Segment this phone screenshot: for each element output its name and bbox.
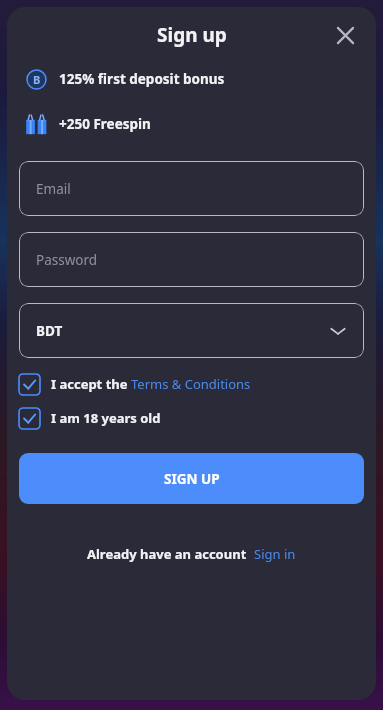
button[interactable]: Sign in — [254, 545, 296, 563]
button[interactable]: Password — [19, 232, 364, 287]
button[interactable]: BDT — [19, 303, 364, 358]
staticText: I am 18 years old — [51, 409, 161, 427]
button[interactable]: I accept the — [19, 370, 364, 398]
staticText: B — [33, 72, 41, 87]
button[interactable]: I am 18 years old — [19, 404, 364, 432]
staticText: Terms & Conditions — [131, 375, 251, 393]
staticText: Password — [36, 251, 98, 269]
staticText: BDT — [36, 322, 63, 340]
staticText: Sign up — [157, 22, 227, 48]
staticText: SIGN UP — [164, 470, 220, 488]
staticText: 125% first deposit bonus — [59, 70, 225, 88]
staticText: +250 Freespin — [59, 115, 151, 133]
button[interactable]: Close — [328, 18, 362, 52]
staticText: Email — [36, 180, 71, 198]
staticText: Already have an account — [87, 545, 247, 563]
button[interactable]: SIGN UP — [19, 453, 364, 504]
staticText: I accept the — [51, 375, 131, 393]
button[interactable]: Email — [19, 161, 364, 216]
staticText: Sign in — [254, 545, 296, 563]
